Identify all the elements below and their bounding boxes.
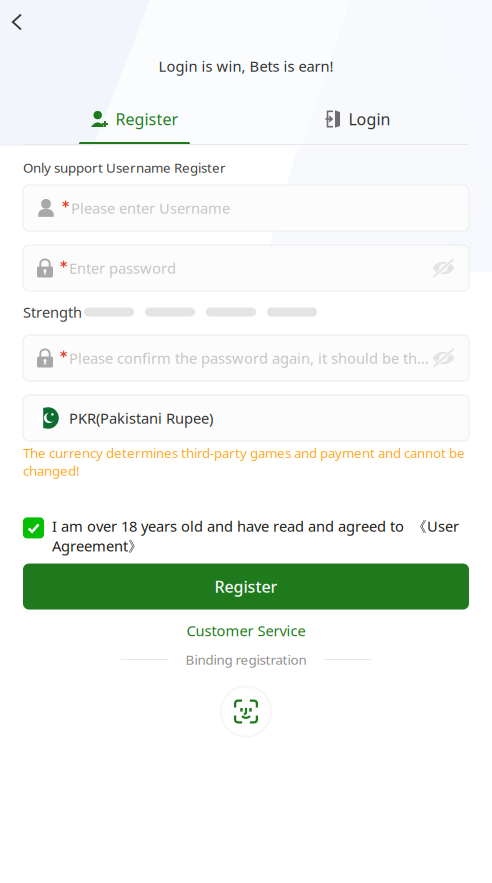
- button[interactable]: Register with Face ID: [220, 685, 272, 737]
- button[interactable]: Login: [246, 77, 469, 145]
- staticText: Enter password: [69, 258, 176, 278]
- staticText: Strength: [23, 302, 82, 322]
- button[interactable]: Back: [0, 0, 55, 44]
- staticText: Only support Username Register: [23, 159, 226, 176]
- staticText: I am over 18 years old and have read and…: [52, 516, 459, 555]
- staticText: Binding registration: [185, 651, 306, 668]
- staticText: Register: [214, 576, 277, 597]
- staticText: Register: [115, 108, 178, 130]
- staticText: Please enter Username: [71, 198, 230, 218]
- button[interactable]: Show password: [432, 258, 455, 277]
- staticText: Login is win, Bets is earn!: [158, 56, 333, 76]
- staticText: PKR(Pakistani Rupee): [69, 408, 213, 428]
- staticText: Login: [348, 108, 390, 130]
- button[interactable]: Register: [23, 77, 246, 145]
- staticText: Customer Service: [186, 621, 305, 640]
- button[interactable]: I am over 18 years old: [23, 517, 44, 538]
- button[interactable]: Register: [23, 563, 469, 609]
- button[interactable]: I am over 18 years old and have read and…: [52, 516, 459, 555]
- button[interactable]: Customer Service: [23, 619, 469, 641]
- staticText: The currency determines third-party game…: [23, 444, 465, 479]
- staticText: Please confirm the password again, it sh…: [69, 348, 429, 368]
- button[interactable]: Show confirm password: [432, 348, 455, 367]
- button[interactable]: PKR(Pakistani Rupee): [23, 395, 469, 441]
